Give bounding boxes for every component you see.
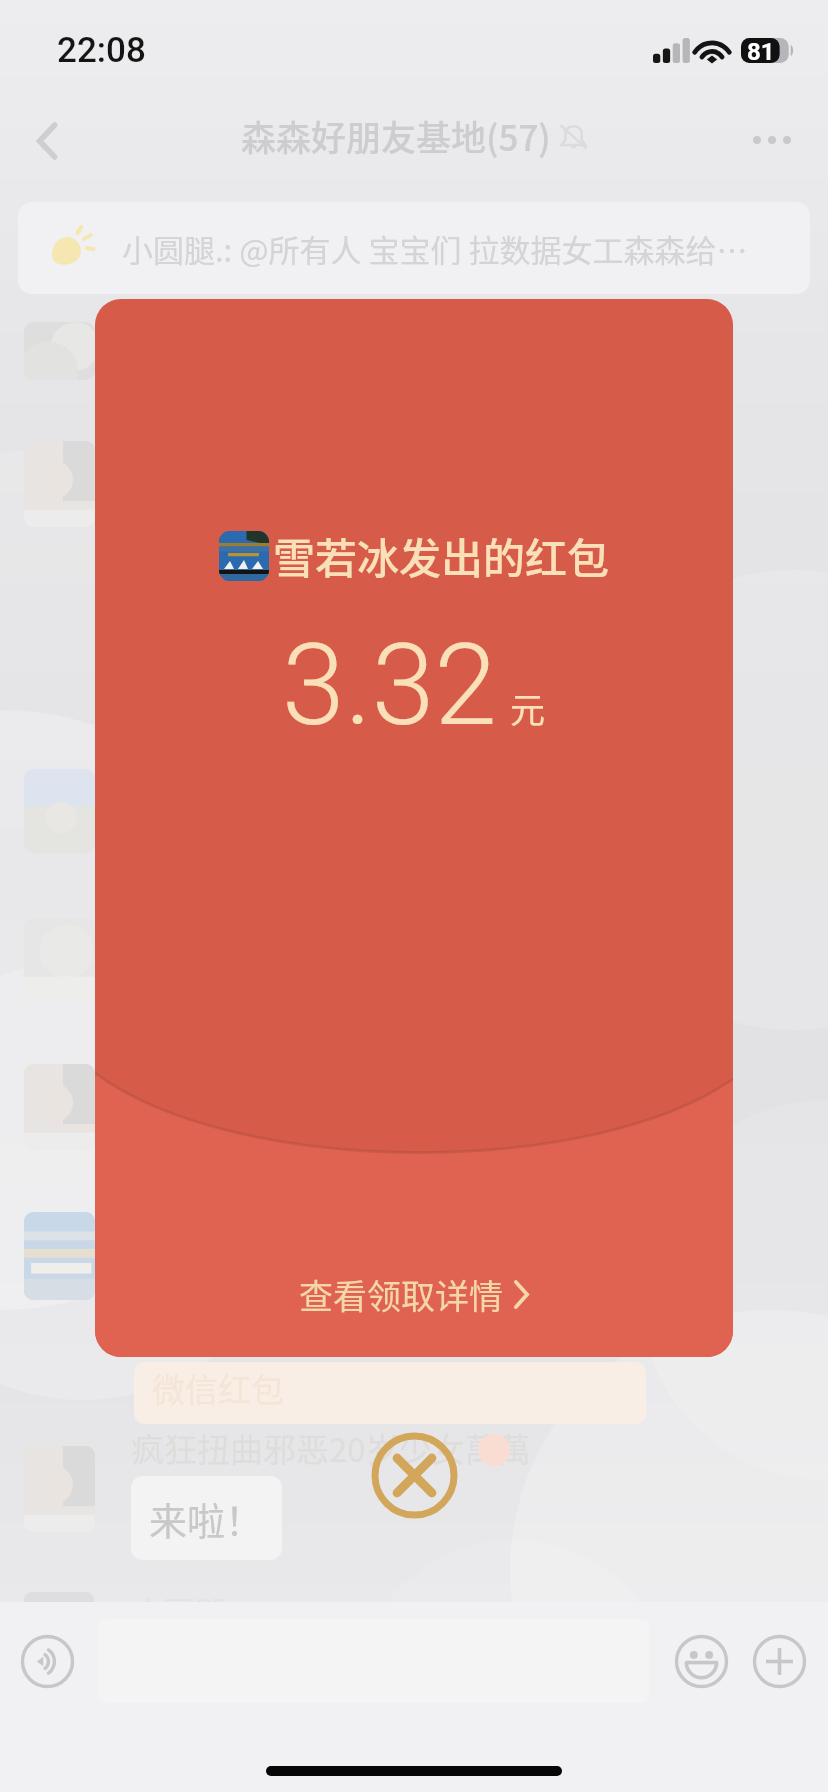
button[interactable]: Close	[371, 1432, 458, 1519]
button[interactable]: Back	[16, 110, 78, 172]
button[interactable]: 查看领取详情	[299, 1270, 529, 1319]
staticText: 81	[747, 38, 775, 63]
staticText: 元	[510, 682, 546, 733]
button[interactable]: Add	[753, 1635, 806, 1688]
staticText: 查看领取详情	[299, 1270, 503, 1319]
button[interactable]: Emoji	[675, 1635, 728, 1688]
staticText: 雪若冰发出的红包	[273, 525, 610, 586]
button[interactable]: 小圆腿.: @所有人 宝宝们 拉数据女工森森给…	[18, 202, 810, 294]
staticText: 小圆腿.: @所有人 宝宝们 拉数据女工森森给…	[122, 226, 748, 271]
staticText: 22:08	[57, 30, 146, 71]
staticText: 森森好朋友基地(57)	[241, 110, 551, 161]
staticText: 3.32	[282, 619, 498, 751]
staticText: 小圆腿	[131, 1588, 228, 1634]
button[interactable]: More options	[740, 108, 804, 172]
button[interactable]: Voice input	[21, 1635, 74, 1688]
staticText: 疯狂扭曲邪恶20岁少女萬萬	[131, 1424, 531, 1472]
staticText: 来啦！	[149, 1491, 264, 1546]
staticText: 微信红包	[152, 1364, 284, 1412]
